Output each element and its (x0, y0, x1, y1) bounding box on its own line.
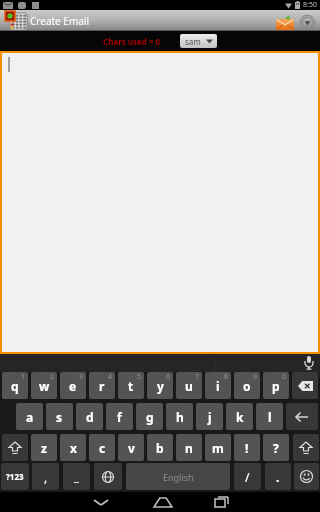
button[interactable]: f (106, 403, 133, 430)
button[interactable] (274, 14, 296, 30)
button[interactable]: c (89, 434, 115, 461)
staticText: 3 (79, 372, 84, 382)
button[interactable]: . (265, 463, 291, 490)
staticText: / (245, 469, 250, 485)
staticText: e (69, 378, 77, 394)
button[interactable] (298, 13, 316, 31)
button[interactable]: g (136, 403, 163, 430)
button[interactable]: ? (263, 434, 289, 461)
staticText: l (268, 409, 272, 425)
button[interactable]: e (60, 372, 86, 399)
button[interactable]: / (234, 463, 261, 490)
staticText: _ (74, 469, 79, 484)
button[interactable]: ! (234, 434, 260, 461)
button[interactable] (89, 492, 113, 512)
staticText: 8 (224, 372, 229, 382)
button[interactable]: s (46, 403, 73, 430)
staticText: 1 (21, 372, 26, 382)
staticText: 0 (282, 372, 287, 382)
button[interactable] (94, 463, 122, 490)
staticText: x (70, 440, 77, 456)
staticText: ? (273, 440, 279, 456)
button[interactable]: sam (180, 34, 217, 48)
button[interactable]: m (205, 434, 231, 461)
staticText: English (163, 471, 194, 483)
button[interactable]: a (16, 403, 43, 430)
staticText: b (156, 440, 164, 456)
staticText: a (26, 409, 34, 425)
button[interactable]: English (126, 463, 230, 490)
button[interactable]: y (147, 372, 173, 399)
button[interactable]: z (31, 434, 57, 461)
button[interactable]: , (32, 463, 59, 490)
button[interactable]: r (89, 372, 115, 399)
button[interactable] (294, 463, 319, 490)
staticText: c (99, 440, 106, 456)
staticText: w (39, 378, 50, 394)
staticText: g (146, 409, 154, 425)
staticText: y (157, 378, 164, 394)
staticText: sam (185, 36, 201, 47)
button[interactable] (293, 434, 319, 461)
button[interactable] (150, 492, 175, 512)
button[interactable]: k (226, 403, 253, 430)
button[interactable]: l (256, 403, 283, 430)
staticText: f (117, 409, 122, 425)
button[interactable] (286, 403, 318, 430)
button[interactable]: i (205, 372, 231, 399)
button[interactable]: ?123 (1, 463, 29, 490)
staticText: d (86, 409, 94, 425)
button[interactable]: j (196, 403, 223, 430)
button[interactable]: q (2, 372, 28, 399)
staticText: 8:50 (303, 0, 317, 10)
button[interactable] (292, 372, 318, 399)
button[interactable]: h (166, 403, 193, 430)
staticText: 4 (108, 372, 113, 382)
staticText: ! (245, 440, 249, 456)
staticText: r (99, 378, 105, 394)
staticText: z (41, 440, 47, 456)
button[interactable] (2, 434, 28, 461)
staticText: Chars used = 0 (103, 36, 161, 47)
button[interactable]: o (234, 372, 260, 399)
staticText: 2 (50, 372, 55, 382)
button[interactable]: b (147, 434, 173, 461)
staticText: 6 (166, 372, 171, 382)
staticText: ?123 (6, 471, 24, 482)
button[interactable]: t (118, 372, 144, 399)
button[interactable]: v (118, 434, 144, 461)
staticText: , (44, 469, 48, 485)
button[interactable]: _ (63, 463, 90, 490)
button[interactable]: d (76, 403, 103, 430)
staticText: m (212, 440, 224, 456)
button[interactable]: p (263, 372, 289, 399)
staticText: v (128, 440, 135, 456)
staticText: o (243, 378, 251, 394)
staticText: j (208, 409, 212, 425)
button[interactable]: n (176, 434, 202, 461)
staticText: . (276, 469, 280, 485)
staticText: 7 (195, 372, 200, 382)
staticText: s (56, 409, 63, 425)
button[interactable] (300, 355, 318, 371)
button[interactable]: x (60, 434, 86, 461)
staticText: q (11, 378, 19, 394)
staticText: t (128, 378, 134, 394)
staticText: i (216, 378, 220, 394)
staticText: n (185, 440, 193, 456)
staticText: k (236, 409, 244, 425)
staticText: 9 (253, 372, 258, 382)
staticText: u (185, 378, 193, 394)
button[interactable]: w (31, 372, 57, 399)
staticText: h (176, 409, 184, 425)
staticText: p (272, 378, 280, 394)
button[interactable]: u (176, 372, 202, 399)
button[interactable] (209, 492, 234, 512)
staticText: 5 (137, 372, 142, 382)
staticText: Create Email (30, 14, 90, 28)
